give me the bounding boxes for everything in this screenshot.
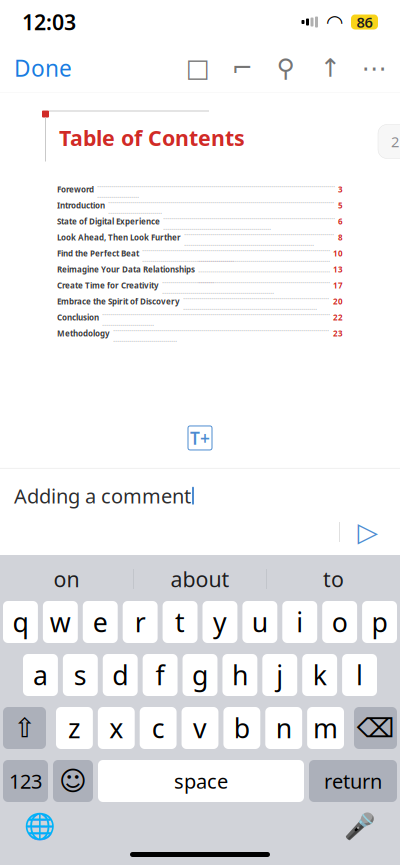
button[interactable]: Numbers xyxy=(3,760,48,802)
staticText: 6 xyxy=(338,216,343,227)
button[interactable]: Emoji xyxy=(53,760,93,802)
button[interactable]: Camera xyxy=(176,48,220,88)
button[interactable]: l xyxy=(342,654,377,696)
button[interactable]: about xyxy=(133,558,266,600)
button[interactable]: x xyxy=(98,707,135,749)
staticText: about xyxy=(170,565,229,593)
staticText: T+ xyxy=(190,426,210,449)
staticText: k xyxy=(313,657,327,693)
staticText: q xyxy=(12,604,28,640)
button[interactable]: More xyxy=(352,48,396,88)
staticText: 2 xyxy=(391,132,399,151)
staticText: Embrace the Spirit of Discovery xyxy=(57,296,180,307)
staticText: □ xyxy=(186,54,210,82)
button[interactable]: w xyxy=(43,601,78,643)
button[interactable]: Search xyxy=(264,48,308,88)
button[interactable]: Done xyxy=(0,46,86,90)
staticText: w xyxy=(50,604,71,640)
button[interactable]: Send xyxy=(348,515,388,549)
staticText: Done xyxy=(14,53,72,83)
staticText: Methodology xyxy=(57,328,110,339)
button[interactable]: e xyxy=(83,601,118,643)
staticText: Reimagine Your Data Relationships xyxy=(57,264,195,275)
staticText: m xyxy=(313,710,338,746)
staticText: a xyxy=(33,657,48,693)
button[interactable]: z xyxy=(56,707,93,749)
staticText: Create Time for Creativity xyxy=(57,280,159,291)
staticText: z xyxy=(68,710,81,746)
staticText: ........................................… xyxy=(108,195,334,216)
staticText: h xyxy=(232,657,248,693)
staticText: n xyxy=(276,710,292,746)
staticText: ▷ xyxy=(357,517,378,547)
staticText: 23 xyxy=(333,328,343,339)
staticText: ◠ xyxy=(327,11,342,33)
button[interactable]: Delete xyxy=(354,707,397,749)
button[interactable]: return xyxy=(309,760,397,802)
button[interactable]: Next keyboard xyxy=(18,806,62,846)
staticText: ⚲ xyxy=(276,54,295,82)
staticText: s xyxy=(74,657,87,693)
button[interactable]: f xyxy=(143,654,178,696)
button[interactable]: i xyxy=(282,601,317,643)
button[interactable]: m xyxy=(307,707,344,749)
staticText: c xyxy=(152,710,165,746)
button[interactable]: space xyxy=(98,760,304,802)
staticText: ........................................… xyxy=(102,307,330,328)
staticText: Introduction xyxy=(57,200,105,211)
staticText: 3 xyxy=(338,184,343,195)
staticText: Look Ahead, Then Look Further xyxy=(57,232,181,243)
staticText: 🎤 xyxy=(344,812,376,841)
button[interactable]: r xyxy=(123,601,158,643)
staticText: u xyxy=(252,604,268,640)
button[interactable]: s xyxy=(63,654,98,696)
staticText: b xyxy=(234,710,250,746)
button[interactable]: g xyxy=(183,654,217,696)
button[interactable]: o xyxy=(322,601,357,643)
staticText: ........................................… xyxy=(198,254,330,285)
button[interactable]: b xyxy=(223,707,260,749)
staticText: ........................................… xyxy=(113,323,329,344)
staticText: y xyxy=(213,604,227,640)
staticText: 22 xyxy=(333,312,343,323)
staticText: 86 xyxy=(356,12,372,32)
button[interactable]: v xyxy=(182,707,218,749)
button[interactable]: p xyxy=(362,601,397,643)
button[interactable]: Share xyxy=(308,48,352,88)
staticText: ⋯ xyxy=(361,54,386,82)
staticText: t xyxy=(175,604,185,640)
staticText: 10 xyxy=(333,248,343,259)
button[interactable]: Dictate xyxy=(338,806,382,846)
button[interactable]: a xyxy=(23,654,58,696)
button[interactable]: t xyxy=(163,601,197,643)
staticText: ........................................… xyxy=(142,243,330,264)
staticText: space xyxy=(174,768,228,794)
staticText: 5 xyxy=(338,200,343,211)
button[interactable]: q xyxy=(3,601,38,643)
button[interactable]: j xyxy=(262,654,297,696)
staticText: Adding a comment xyxy=(14,482,191,509)
button[interactable]: Add text xyxy=(188,426,212,450)
staticText: l xyxy=(356,657,363,693)
button[interactable]: c xyxy=(140,707,177,749)
button[interactable]: h xyxy=(222,654,257,696)
staticText: g xyxy=(192,657,208,693)
button[interactable]: y xyxy=(202,601,237,643)
staticText: o xyxy=(332,604,348,640)
staticText: r xyxy=(135,604,146,640)
staticText: ........................................… xyxy=(162,275,330,296)
button[interactable]: Markup xyxy=(220,48,264,88)
button[interactable]: d xyxy=(103,654,138,696)
staticText: 8 xyxy=(338,232,343,243)
staticText: 13 xyxy=(333,264,343,275)
staticText: ⌫ xyxy=(356,713,394,743)
button[interactable]: Shift xyxy=(3,707,46,749)
button[interactable]: u xyxy=(242,601,277,643)
staticText: Table of Contents xyxy=(59,123,245,152)
button[interactable]: to xyxy=(267,558,400,600)
button[interactable]: on xyxy=(0,558,133,600)
button[interactable]: k xyxy=(302,654,337,696)
staticText: 123 xyxy=(9,768,42,794)
staticText: ⌐ xyxy=(231,54,252,82)
button[interactable]: n xyxy=(265,707,302,749)
